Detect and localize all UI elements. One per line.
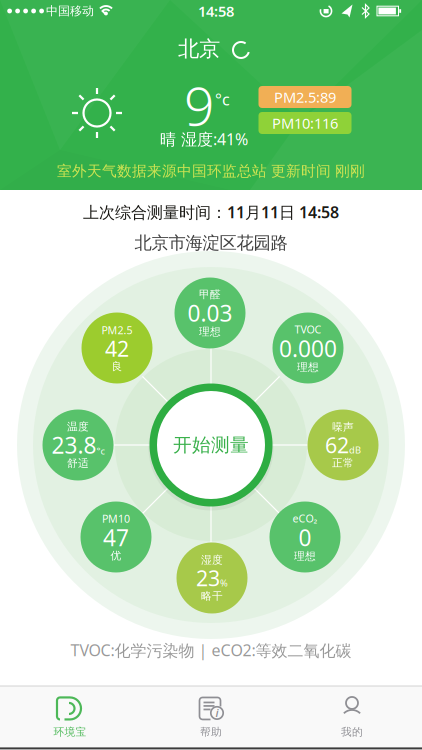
staticText: dB — [349, 444, 361, 456]
staticText: 舒适 — [67, 457, 89, 470]
staticText: 环境宝 — [53, 725, 86, 738]
button[interactable]: 环境宝 — [10, 689, 130, 745]
staticText: °c — [215, 89, 230, 110]
button[interactable]: 我的 — [292, 689, 412, 745]
staticText: 良 — [111, 360, 122, 373]
staticText: 0 — [298, 522, 311, 553]
staticText: TVOC — [294, 322, 321, 336]
staticText: 理想 — [294, 550, 316, 563]
staticText: 北京 — [178, 36, 220, 62]
staticText: PM10 — [102, 512, 130, 526]
staticText: 北京市海淀区花园路 — [134, 232, 287, 254]
staticText: 室外天气数据来源中国环监总站 更新时间 刚刚 — [57, 162, 365, 180]
button[interactable]: 开始测量 — [150, 384, 272, 506]
staticText: 理想 — [199, 325, 221, 338]
staticText: °c — [96, 445, 104, 457]
staticText: TVOC:化学污染物 | eCO2:等效二氧化碳 — [70, 639, 351, 661]
staticText: 湿度 — [201, 553, 223, 567]
staticText: i — [215, 706, 218, 720]
staticText: 23 — [196, 564, 220, 592]
staticText: 42 — [105, 334, 129, 363]
staticText: 开始测量 — [173, 433, 249, 456]
staticText: PM10:116 — [272, 113, 338, 133]
staticText: 上次综合测量时间：11月11日 14:58 — [83, 201, 339, 223]
staticText: 优 — [110, 549, 121, 562]
staticText: PM2.5 — [101, 323, 132, 337]
staticText: 理想 — [297, 361, 319, 374]
staticText: 正常 — [332, 456, 354, 469]
staticText: % — [220, 577, 228, 589]
staticText: 略干 — [201, 589, 223, 602]
staticText: 23.8 — [51, 430, 96, 460]
staticText: 晴 湿度:41% — [160, 128, 248, 150]
staticText: 47 — [103, 522, 129, 553]
staticText: 9 — [184, 70, 214, 140]
button[interactable]: 刷新 — [228, 37, 254, 63]
staticText: 0.03 — [187, 298, 232, 328]
button[interactable]: i — [151, 689, 271, 745]
staticText: 甲醛 — [199, 288, 221, 301]
staticText: 中国移动 — [46, 4, 94, 18]
staticText: 0.000 — [279, 333, 337, 364]
staticText: 温度 — [67, 420, 89, 433]
staticText: 62 — [325, 431, 349, 459]
staticText: 噪声 — [332, 420, 354, 434]
staticText: 14:58 — [198, 1, 234, 21]
staticText: PM2.5:89 — [274, 87, 336, 107]
staticText: 我的 — [341, 725, 363, 738]
staticText: 帮助 — [200, 725, 222, 738]
staticText: eCO₂ — [292, 511, 317, 525]
